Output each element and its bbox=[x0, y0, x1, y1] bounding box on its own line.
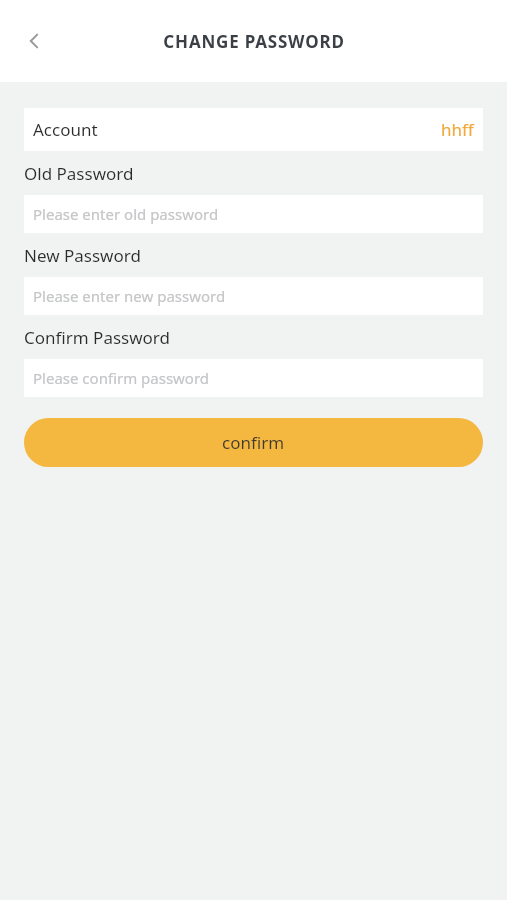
button[interactable]: Please enter new password bbox=[24, 277, 483, 315]
staticText: Confirm Password bbox=[24, 326, 170, 349]
button[interactable]: Back bbox=[10, 17, 58, 65]
staticText: Please enter old password bbox=[33, 204, 219, 224]
staticText: Account bbox=[33, 118, 98, 141]
staticText: Please enter new password bbox=[33, 286, 226, 306]
staticText: Please confirm password bbox=[33, 368, 210, 388]
staticText: CHANGE PASSWORD bbox=[163, 30, 345, 53]
staticText: confirm bbox=[222, 431, 285, 454]
button[interactable]: Please enter old password bbox=[24, 195, 483, 233]
staticText: New Password bbox=[24, 244, 141, 267]
button[interactable]: Please confirm password bbox=[24, 359, 483, 397]
staticText: hhff bbox=[441, 118, 474, 141]
button[interactable]: confirm bbox=[24, 418, 483, 467]
staticText: Old Password bbox=[24, 162, 134, 185]
button[interactable]: Account bbox=[24, 108, 483, 151]
